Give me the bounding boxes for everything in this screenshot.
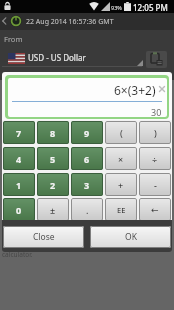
- staticText: ←: [151, 205, 159, 215]
- button[interactable]: 9: [71, 121, 103, 144]
- button[interactable]: 6: [71, 147, 103, 170]
- button[interactable]: 2: [37, 173, 69, 196]
- staticText: 30: [151, 106, 162, 118]
- staticText: OK: [125, 231, 137, 243]
- staticText: 12:05 PM: [133, 2, 168, 12]
- staticText: 6×(3+2): [114, 82, 156, 97]
- staticText: calculator.: [2, 250, 33, 259]
- button[interactable]: EE: [105, 198, 137, 221]
- staticText: USD - US Dollar: [28, 52, 86, 63]
- staticText: (: [120, 127, 123, 139]
- staticText: Close: [33, 231, 55, 243]
- staticText: ±: [50, 204, 56, 216]
- button[interactable]: 7: [3, 121, 35, 144]
- button[interactable]: ): [139, 121, 171, 144]
- button[interactable]: OK: [90, 226, 171, 248]
- button[interactable]: ÷: [139, 147, 171, 170]
- staticText: 5: [50, 153, 56, 165]
- button[interactable]: 8: [37, 121, 69, 144]
- staticText: 3: [84, 179, 90, 191]
- button[interactable]: ±: [37, 198, 69, 221]
- staticText: EE: [117, 205, 126, 215]
- button[interactable]: +: [105, 173, 137, 196]
- staticText: 4: [16, 153, 22, 165]
- button[interactable]: 0: [3, 198, 35, 221]
- staticText: 9: [84, 127, 90, 139]
- button[interactable]: Close: [3, 226, 84, 248]
- staticText: 7: [16, 127, 22, 139]
- staticText: From: [4, 34, 23, 44]
- staticText: 1: [16, 179, 22, 191]
- button[interactable]: 4: [3, 147, 35, 170]
- button[interactable]: (: [105, 121, 137, 144]
- staticText: -: [154, 179, 157, 191]
- button[interactable]: [146, 51, 167, 68]
- button[interactable]: ×: [105, 147, 137, 170]
- staticText: .: [86, 204, 89, 216]
- staticText: 93%: [111, 4, 122, 11]
- staticText: 0: [16, 204, 22, 216]
- staticText: ÷: [152, 153, 158, 165]
- staticText: +: [118, 179, 124, 191]
- button[interactable]: 5: [37, 147, 69, 170]
- button[interactable]: -: [139, 173, 171, 196]
- button[interactable]: 3: [71, 173, 103, 196]
- staticText: 2: [50, 179, 56, 191]
- staticText: ×: [118, 153, 124, 165]
- staticText: 6: [84, 153, 90, 165]
- button[interactable]: 1: [3, 173, 35, 196]
- button[interactable]: ←: [139, 198, 171, 221]
- staticText: ): [154, 127, 157, 139]
- button[interactable]: .: [71, 198, 103, 221]
- staticText: 22 Aug 2014 16:57:36 GMT: [26, 17, 114, 27]
- staticText: 8: [50, 127, 56, 139]
